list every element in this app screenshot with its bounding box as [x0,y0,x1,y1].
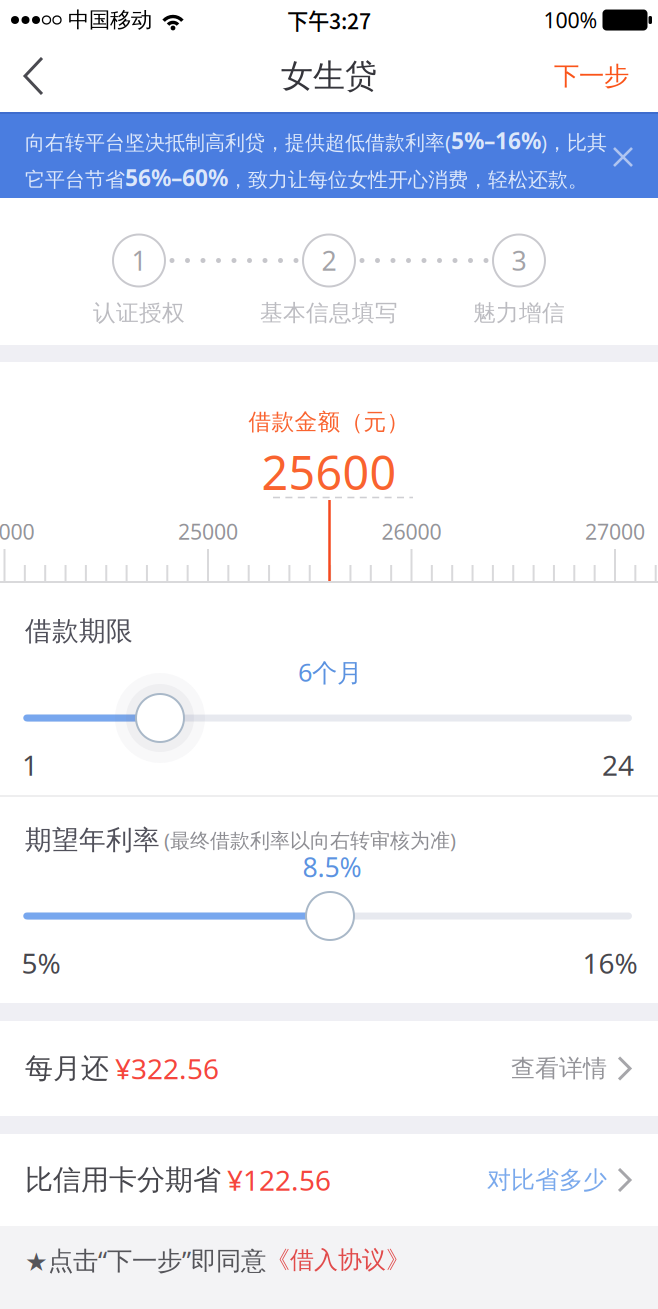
staticText: ¥122.56 [227,1161,331,1199]
staticText: (最终借款利率以向右转审核为准) [164,827,456,853]
staticText: 6个月 [298,655,362,689]
staticText: 中国移动 [68,7,152,33]
staticText: 26000 [381,517,441,546]
staticText: 100% [543,6,597,34]
staticText: 每月还 [25,1051,109,1086]
button[interactable]: Back [0,42,64,110]
staticText: 25600 [261,441,396,503]
staticText: ★点击“下一步”即同意 [25,1243,266,1277]
staticText: 魅力增信 [473,299,565,327]
staticText: 查看详情 [511,1054,607,1083]
staticText: 借款金额（元） [248,408,409,436]
staticText: 向右转平台坚决抵制高利贷，提供超低借款利率(5%–16%)，比其 [25,125,607,155]
staticText: 对比省多少 [487,1165,607,1195]
staticText: 24 [602,746,634,784]
staticText: 24000 [0,517,34,546]
staticText: 3 [511,243,526,278]
staticText: 它平台节省56%–60%，致力让每位女性开心消费，轻松还款。 [25,162,588,193]
staticText: ¥322.56 [115,1050,219,1087]
staticText: 5% [21,944,60,982]
staticText: 27000 [585,517,645,546]
staticText: 8.5% [302,849,361,885]
button[interactable]: 下一步 [538,42,658,109]
staticText: 16% [582,944,637,982]
staticText: 借款期限 [25,615,133,647]
staticText: 期望年利率 [25,824,160,856]
staticText: 《借入协议》 [266,1245,410,1275]
staticText: 下一步 [554,60,629,91]
staticText: 1 [131,243,146,278]
button[interactable]: 比信用卡分期省 [0,1134,658,1226]
staticText: 基本信息填写 [260,299,398,327]
button[interactable]: 《借入协议》 [266,1245,410,1275]
button[interactable]: Close [601,135,645,179]
staticText: 女生贷 [281,56,377,96]
staticText: 认证授权 [93,299,185,327]
staticText: 比信用卡分期省 [25,1163,221,1197]
staticText: 25000 [178,517,238,546]
staticText: 下午3:27 [287,5,371,35]
staticText: 2 [321,243,336,278]
staticText: 1 [22,746,38,784]
button[interactable]: 每月还 [0,1021,658,1116]
